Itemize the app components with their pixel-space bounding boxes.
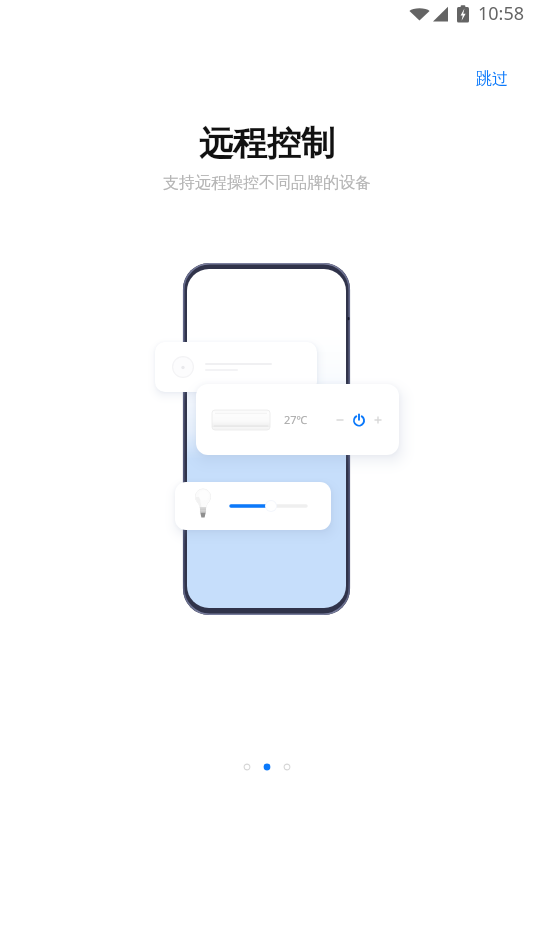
- button[interactable]: Go to page 1: [243, 763, 251, 771]
- staticText: 27℃: [284, 412, 308, 427]
- staticText: 10:58: [478, 1, 525, 26]
- staticText: 支持远程操控不同品牌的设备: [163, 173, 371, 193]
- button[interactable]: Go to page 3: [283, 763, 291, 771]
- staticText: 跳过: [476, 69, 508, 89]
- button[interactable]: Increase temperature: [371, 413, 385, 427]
- button[interactable]: Power: [351, 411, 367, 427]
- button[interactable]: Go to page 2: [263, 763, 271, 771]
- staticText: 远程控制: [199, 122, 335, 165]
- button[interactable]: Decrease temperature: [333, 413, 347, 427]
- button[interactable]: 跳过: [464, 63, 520, 95]
